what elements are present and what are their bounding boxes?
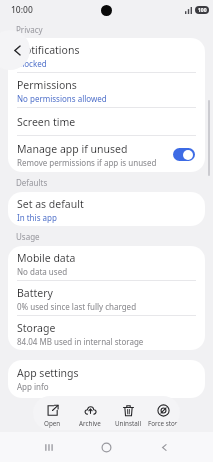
staticText: Permissions	[17, 78, 77, 92]
staticText: Usage	[16, 231, 40, 242]
staticText: App info	[17, 381, 49, 392]
staticText: Blocked	[17, 58, 47, 69]
button[interactable]: Battery	[8, 281, 205, 315]
staticText: No data used	[17, 266, 68, 277]
staticText: 0% used since last fully charged	[17, 301, 137, 312]
button[interactable]: Force stop	[147, 399, 180, 428]
button[interactable]: Uninstall	[109, 399, 147, 428]
button[interactable]: Storage	[8, 316, 205, 350]
staticText: Storage	[17, 321, 56, 335]
staticText: Set as default	[17, 197, 84, 211]
staticText: Uninstall	[115, 419, 142, 428]
staticText: Screen time	[17, 115, 76, 129]
staticText: Open	[44, 419, 61, 428]
button[interactable]: Screen time	[8, 108, 205, 135]
staticText: Remove permissions if app is unused	[17, 157, 157, 168]
button[interactable]: Manage app if unused	[8, 136, 205, 172]
button[interactable]: Archive	[71, 399, 109, 428]
staticText: Mobile data	[17, 251, 76, 265]
staticText: Manage app if unused	[17, 142, 128, 156]
button[interactable]: Mobile data	[8, 246, 205, 280]
staticText: 10:00	[11, 4, 33, 16]
staticText: 84.04 MB used in internal storage	[17, 336, 144, 347]
staticText: Privacy	[16, 24, 43, 35]
staticText: No permissions allowed	[17, 93, 107, 104]
staticText: App settings	[17, 366, 79, 380]
button[interactable]: Open	[33, 399, 71, 428]
staticText: Defaults	[16, 177, 48, 188]
button[interactable]: Manage app if unused	[173, 148, 195, 161]
button[interactable]: Back	[0, 30, 30, 70]
staticText: Notifications	[17, 43, 80, 57]
staticText: 100	[198, 7, 207, 14]
button[interactable]: Notifications	[8, 38, 205, 72]
button[interactable]: Permissions	[8, 73, 205, 107]
staticText: Force stop	[148, 419, 179, 428]
staticText: Battery	[17, 286, 53, 300]
button[interactable]: Set as default	[8, 192, 205, 226]
button[interactable]: App settings	[8, 360, 205, 398]
staticText: In this app	[17, 212, 57, 223]
staticText: Archive	[79, 419, 101, 428]
